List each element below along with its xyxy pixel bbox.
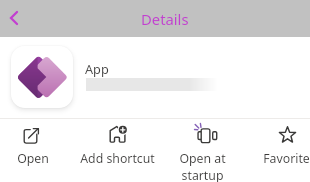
staticText: App bbox=[85, 60, 109, 77]
button[interactable]: App icon bbox=[11, 46, 73, 108]
button[interactable]: Favorite bbox=[244, 119, 310, 182]
button[interactable]: Add shortcut bbox=[75, 119, 160, 182]
staticText: Add shortcut bbox=[80, 150, 155, 167]
button[interactable]: Open at startup bbox=[160, 119, 245, 182]
staticText: Details bbox=[141, 9, 189, 29]
button[interactable]: Back bbox=[2, 5, 28, 31]
staticText: Open at startup bbox=[179, 150, 226, 182]
staticText: Favorite bbox=[263, 150, 310, 167]
staticText: Open bbox=[17, 150, 49, 167]
button[interactable]: Open bbox=[0, 119, 75, 182]
